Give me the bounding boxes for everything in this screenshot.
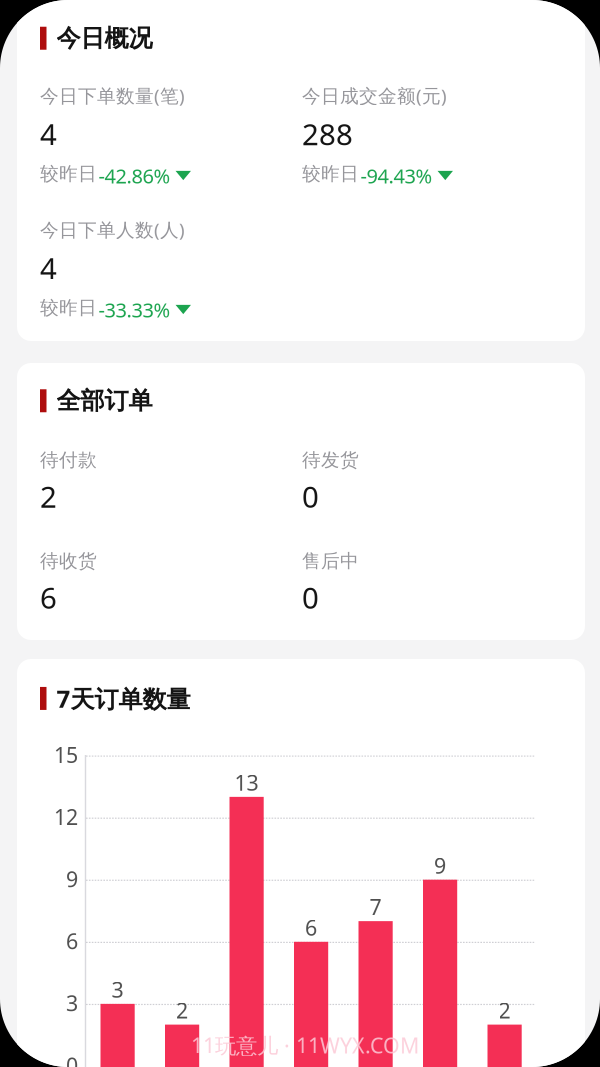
button[interactable]: 售后中	[302, 549, 564, 611]
staticText: -94.43%	[360, 162, 432, 189]
staticText: 9	[434, 851, 446, 879]
staticText: 9	[66, 865, 78, 893]
staticText: 12	[54, 803, 78, 831]
staticText: 今日下单人数(人)	[40, 217, 185, 242]
staticText: 售后中	[302, 549, 359, 572]
staticText: 4	[40, 114, 57, 153]
staticText: 今日概况	[56, 23, 152, 53]
staticText: 待发货	[302, 448, 359, 471]
staticText: 6	[305, 913, 317, 942]
staticText: 全部订单	[56, 386, 152, 415]
staticText: 较昨日	[302, 162, 359, 185]
staticText: 4	[40, 248, 57, 287]
staticText: 0	[302, 477, 319, 516]
button[interactable]: 今日成交金额(元)	[302, 83, 564, 195]
staticText: 今日下单数量(笔)	[40, 83, 185, 108]
button[interactable]: 待发货	[302, 448, 564, 510]
staticText: -42.86%	[98, 162, 170, 189]
staticText: 13	[234, 768, 258, 797]
staticText: 6	[40, 578, 57, 617]
staticText: 今日成交金额(元)	[302, 83, 447, 108]
staticText: 较昨日	[40, 296, 97, 319]
staticText: 7天订单数量	[56, 682, 190, 714]
staticText: 3	[66, 989, 78, 1017]
staticText: 2	[498, 996, 510, 1024]
button[interactable]: 今日下单数量(笔)	[40, 83, 302, 195]
button[interactable]: 今日下单人数(人)	[40, 217, 302, 329]
staticText: 3	[111, 975, 123, 1004]
staticText: 11玩意儿 · 11WYX.COM	[191, 1031, 419, 1059]
button[interactable]: 待收货	[40, 549, 302, 611]
button[interactable]: 待付款	[40, 448, 302, 510]
staticText: 288	[302, 114, 353, 153]
staticText: 2	[40, 477, 57, 516]
staticText: 0	[302, 578, 319, 617]
staticText: 较昨日	[40, 162, 97, 185]
staticText: 7	[369, 893, 381, 921]
staticText: 待付款	[40, 448, 97, 471]
staticText: 0	[66, 1051, 78, 1067]
staticText: -33.33%	[98, 296, 170, 323]
staticText: 待收货	[40, 549, 97, 572]
staticText: 15	[54, 740, 78, 769]
staticText: 2	[176, 996, 188, 1024]
staticText: 6	[66, 927, 78, 955]
